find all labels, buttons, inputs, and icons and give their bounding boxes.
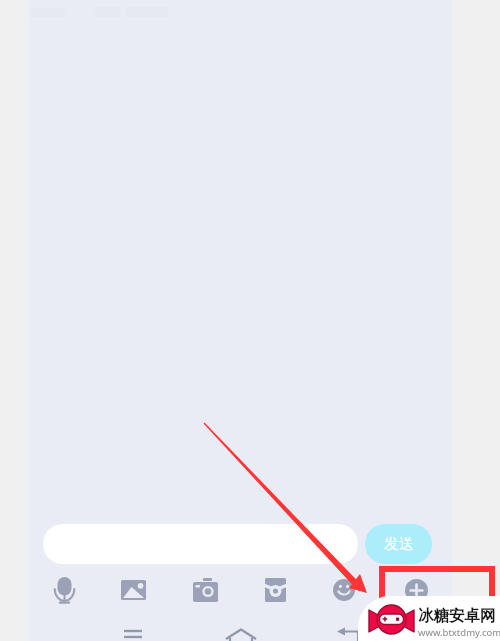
button[interactable]: Home	[221, 620, 261, 641]
button[interactable]: Camera	[183, 570, 227, 610]
button[interactable]: Back	[330, 620, 370, 641]
button[interactable]: More options	[394, 570, 438, 610]
button[interactable]: Emoji	[322, 570, 366, 610]
button[interactable]: 发送	[365, 524, 432, 564]
button[interactable]: Red packet	[253, 570, 297, 610]
staticText: 发送	[384, 535, 414, 554]
button[interactable]	[43, 524, 358, 564]
button[interactable]: Voice message	[42, 570, 86, 610]
button[interactable]: Recent apps	[114, 620, 154, 641]
staticText: 冰糖安卓网	[418, 606, 496, 626]
button[interactable]: Photos	[111, 570, 155, 610]
staticText: www.btxtdmy.com	[418, 626, 500, 639]
